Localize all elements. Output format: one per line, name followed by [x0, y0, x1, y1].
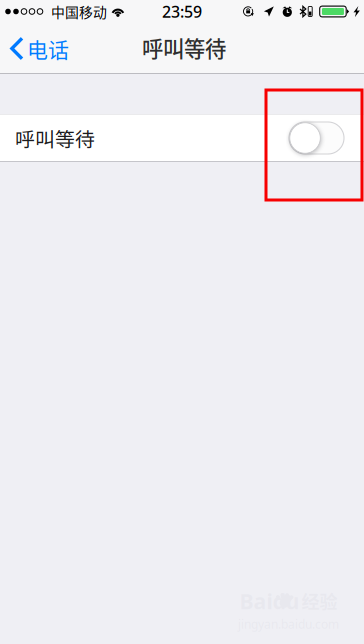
- staticText: 呼叫等待: [15, 124, 95, 152]
- staticText: 23:59: [162, 1, 202, 22]
- staticText: 中国移动: [51, 1, 107, 22]
- button[interactable]: 呼叫等待: [0, 114, 364, 162]
- staticText: 呼叫等待: [142, 32, 226, 63]
- staticText: 电话: [27, 33, 69, 64]
- button[interactable]: 电话: [0, 23, 79, 73]
